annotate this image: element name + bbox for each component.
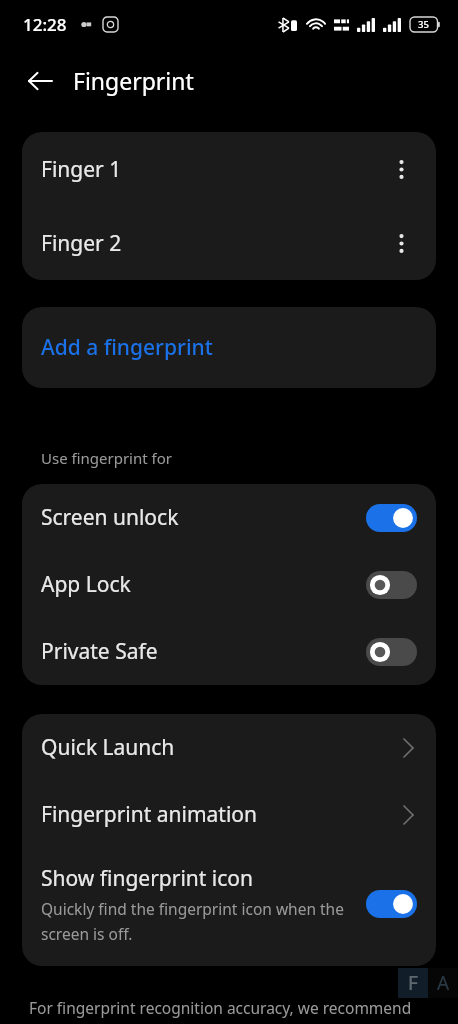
staticText: Fingerprint animation: [41, 800, 258, 829]
staticText: App Lock: [41, 570, 131, 599]
staticText: Finger 1: [41, 155, 122, 184]
button[interactable]: More options for Finger 2: [383, 225, 419, 261]
staticText: Quickly find the fingerprint icon when t…: [41, 898, 354, 944]
button[interactable]: Private Safe: [22, 618, 436, 685]
staticText: Add a fingerprint: [41, 333, 213, 362]
staticText: Screen unlock: [41, 503, 179, 532]
staticText: For fingerprint recognition accuracy, we…: [29, 997, 412, 1018]
button[interactable]: Screen unlock: [22, 484, 436, 551]
button[interactable]: Quick Launch: [22, 714, 436, 781]
staticText: F: [408, 970, 418, 996]
staticText: Finger 2: [41, 229, 122, 258]
staticText: Use fingerprint for: [41, 448, 172, 468]
staticText: A: [437, 970, 450, 996]
staticText: Quick Launch: [41, 733, 175, 762]
button[interactable]: App Lock: [22, 551, 436, 618]
button[interactable]: Fingerprint animation: [22, 781, 436, 848]
button[interactable]: Back: [17, 58, 62, 103]
staticText: Fingerprint: [73, 65, 194, 96]
staticText: 12:28: [23, 13, 67, 36]
button[interactable]: Add a fingerprint: [22, 307, 436, 388]
button[interactable]: Show fingerprint icon: [22, 848, 436, 966]
button[interactable]: Finger 2: [22, 206, 436, 280]
staticText: 35: [418, 18, 429, 31]
staticText: Show fingerprint icon: [41, 864, 254, 893]
button[interactable]: Finger 1: [22, 132, 436, 206]
staticText: Private Safe: [41, 637, 158, 666]
button[interactable]: More options for Finger 1: [383, 151, 419, 187]
